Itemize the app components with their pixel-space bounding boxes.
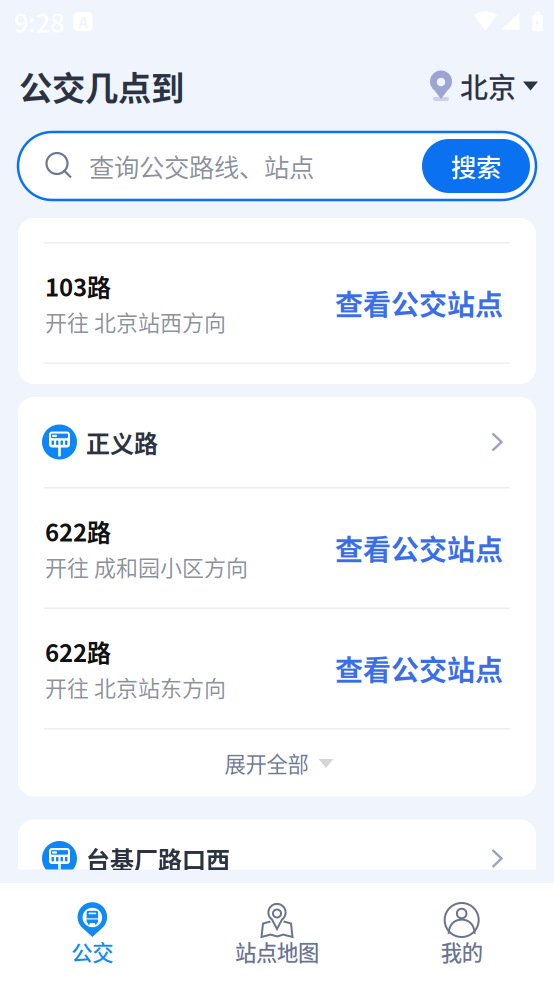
staticText: 9:28 bbox=[14, 3, 64, 40]
staticText: A bbox=[78, 11, 87, 32]
staticText: 开往 北京站西方向 bbox=[45, 305, 226, 337]
staticText: 我的 bbox=[441, 936, 483, 967]
button[interactable]: 我的 bbox=[369, 883, 554, 984]
staticText: 查询公交路线、站点 bbox=[89, 148, 314, 184]
staticText: 622路 bbox=[45, 634, 111, 669]
staticText: 查看公交站点 bbox=[335, 648, 503, 689]
button[interactable]: 622路 bbox=[18, 488, 536, 607]
button[interactable]: 展开全部 bbox=[18, 729, 536, 796]
staticText: 开往 北京站东方向 bbox=[45, 671, 226, 703]
button[interactable]: 正义路 bbox=[18, 397, 536, 487]
staticText: 622路 bbox=[45, 514, 111, 548]
button[interactable]: 103路 bbox=[18, 243, 536, 362]
staticText: 北京 bbox=[460, 66, 516, 106]
staticText: 站点地图 bbox=[235, 936, 319, 967]
button[interactable]: 北京 bbox=[430, 66, 536, 106]
button[interactable]: 公交 bbox=[0, 883, 185, 984]
staticText: 正义路 bbox=[86, 425, 158, 459]
staticText: 台基厂路口西 bbox=[86, 841, 230, 876]
staticText: 展开全部 bbox=[224, 748, 308, 778]
button[interactable]: 站点地图 bbox=[185, 883, 369, 984]
staticText: 查看公交站点 bbox=[335, 283, 503, 323]
staticText: 搜索 bbox=[451, 148, 501, 184]
button[interactable]: 622路 bbox=[18, 609, 536, 728]
button[interactable]: 搜索 bbox=[422, 139, 530, 193]
staticText: 开往 成和园小区方向 bbox=[45, 550, 248, 582]
staticText: 公交 bbox=[71, 936, 113, 967]
staticText: 103路 bbox=[45, 269, 111, 303]
staticText: 公交几点到 bbox=[19, 62, 184, 110]
button[interactable]: 台基厂路口西 bbox=[18, 819, 536, 897]
staticText: 查看公交站点 bbox=[335, 528, 503, 568]
